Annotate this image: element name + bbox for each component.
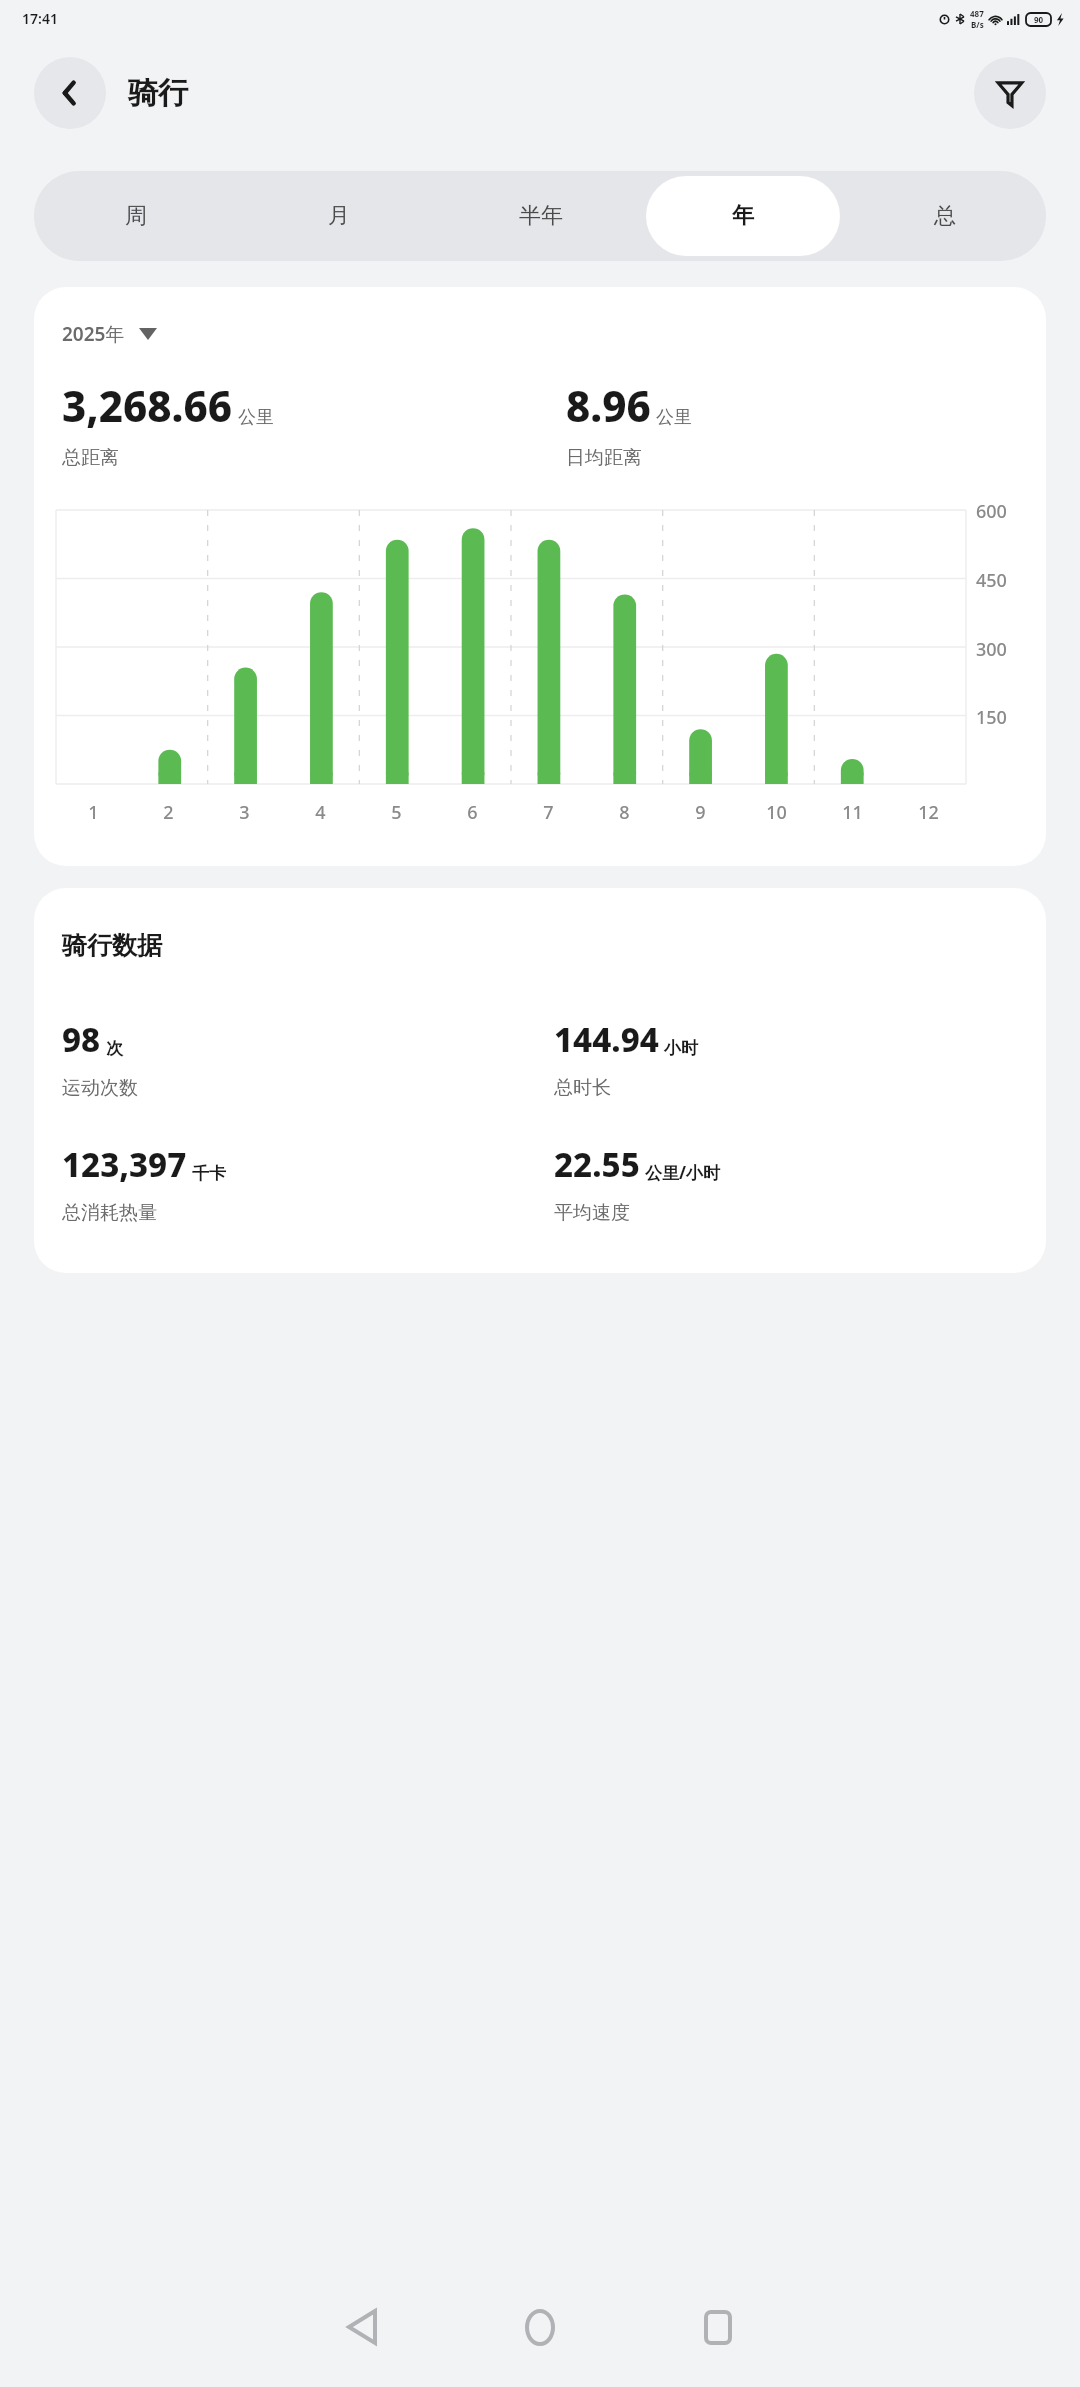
- staticText: 小时: [664, 1038, 698, 1059]
- staticText: 1: [88, 800, 99, 825]
- staticText: 6: [467, 800, 478, 825]
- staticText: 90: [1034, 14, 1044, 25]
- staticText: 公里: [656, 406, 692, 429]
- staticText: 8: [619, 800, 630, 825]
- staticText: 骑行数据: [62, 930, 162, 961]
- staticText: 2: [163, 800, 174, 825]
- button[interactable]: Filter: [974, 57, 1046, 129]
- staticText: 总时长: [554, 1076, 611, 1100]
- staticText: 12: [918, 800, 939, 825]
- staticText: 平均速度: [554, 1201, 630, 1225]
- staticText: 周: [125, 202, 147, 230]
- staticText: B/s: [971, 19, 984, 30]
- staticText: 月: [328, 202, 350, 230]
- staticText: 总距离: [62, 446, 119, 470]
- staticText: 7: [543, 800, 554, 825]
- button[interactable]: 周: [38, 176, 233, 256]
- button[interactable]: 年: [646, 176, 840, 256]
- staticText: 半年: [519, 202, 563, 230]
- button[interactable]: Back: [312, 2277, 412, 2377]
- staticText: 10: [766, 800, 787, 825]
- staticText: 3,268.66: [62, 377, 233, 434]
- staticText: 次: [106, 1038, 123, 1059]
- staticText: 总: [934, 202, 956, 230]
- button[interactable]: 总: [848, 176, 1042, 256]
- button[interactable]: Home: [490, 2277, 590, 2377]
- button[interactable]: Back: [34, 57, 106, 129]
- staticText: 公里/小时: [645, 1161, 721, 1184]
- button[interactable]: Recent apps: [668, 2277, 768, 2377]
- staticText: 22.55: [554, 1142, 640, 1187]
- staticText: 17:41: [22, 9, 58, 28]
- staticText: 450: [976, 568, 1007, 593]
- staticText: 11: [842, 800, 863, 825]
- staticText: 9: [695, 800, 706, 825]
- staticText: 5: [391, 800, 402, 825]
- staticText: 123,397: [62, 1142, 187, 1187]
- staticText: 年: [732, 202, 754, 230]
- staticText: 300: [976, 637, 1007, 662]
- button[interactable]: 月: [241, 176, 436, 256]
- staticText: 骑行: [128, 74, 188, 112]
- button[interactable]: 半年: [444, 176, 638, 256]
- button[interactable]: 2025年: [62, 321, 157, 347]
- staticText: 487: [970, 8, 984, 19]
- staticText: 150: [976, 705, 1007, 730]
- staticText: 98: [62, 1017, 101, 1062]
- staticText: 8.96: [566, 377, 651, 434]
- staticText: 运动次数: [62, 1076, 138, 1100]
- staticText: 3: [239, 800, 250, 825]
- staticText: 600: [976, 499, 1007, 524]
- staticText: 公里: [238, 406, 274, 429]
- staticText: 4: [315, 800, 326, 825]
- staticText: 2025年: [62, 321, 125, 347]
- staticText: 千卡: [192, 1163, 226, 1184]
- staticText: 144.94: [554, 1017, 659, 1062]
- staticText: 总消耗热量: [62, 1201, 157, 1225]
- staticText: 日均距离: [566, 446, 642, 470]
